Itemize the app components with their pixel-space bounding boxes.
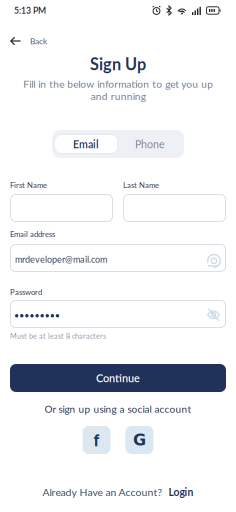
staticText: Continue: [96, 371, 140, 384]
button[interactable]: Back: [10, 36, 47, 46]
button[interactable]: Email: [54, 134, 118, 154]
staticText: Already Have an Account?: [42, 486, 162, 498]
button[interactable]: Continue: [10, 364, 226, 392]
button[interactable]: Sign up with Google: [125, 426, 153, 454]
staticText: Fill in the below information to get you…: [23, 78, 213, 102]
staticText: 5:13 PM: [14, 5, 46, 16]
button[interactable]: Sign up with Facebook: [82, 426, 110, 454]
button[interactable]: Phone: [118, 134, 182, 154]
staticText: mrdeveloper@mail.com: [15, 254, 107, 265]
staticText: Or sign up using a social account: [44, 403, 191, 415]
staticText: G: [133, 431, 146, 449]
button[interactable]: Login: [168, 486, 193, 498]
staticText: Password: [10, 287, 42, 297]
staticText: Email: [73, 138, 99, 150]
staticText: Email address: [10, 229, 55, 239]
staticText: Must be at least 8 characters: [10, 332, 106, 340]
button[interactable]: Show password: [207, 307, 220, 321]
staticText: First Name: [10, 180, 47, 190]
staticText: Login: [168, 486, 193, 498]
staticText: Phone: [135, 138, 165, 150]
staticText: Back: [30, 36, 47, 46]
staticText: Sign Up: [90, 54, 146, 74]
staticText: f: [93, 430, 99, 450]
staticText: Last Name: [123, 180, 159, 190]
